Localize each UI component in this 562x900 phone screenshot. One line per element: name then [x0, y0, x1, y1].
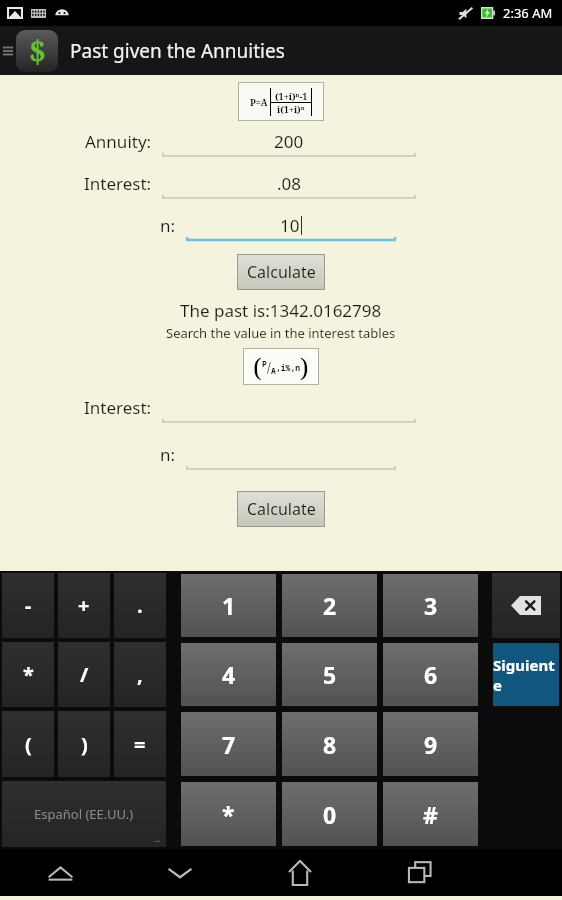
- staticText: #: [423, 799, 438, 830]
- staticText: Calculate: [247, 498, 316, 520]
- button[interactable]: Back: [0, 849, 120, 896]
- button[interactable]: Siguiente: [493, 643, 559, 706]
- staticText: Interest:: [84, 396, 152, 419]
- staticText: 4: [222, 659, 236, 690]
- button[interactable]: n:: [0, 443, 562, 474]
- button[interactable]: Español (EE.UU.): [2, 781, 166, 847]
- staticText: n:: [160, 214, 176, 237]
- staticText: A: [271, 365, 276, 376]
- staticText: Interest:: [84, 172, 152, 195]
- staticText: i(1+i)ⁿ: [277, 103, 305, 115]
- button[interactable]: /: [58, 642, 110, 707]
- staticText: /: [267, 358, 271, 376]
- button[interactable]: Interest:: [0, 396, 562, 427]
- staticText: .08: [277, 172, 302, 195]
- staticText: The past is:1342.0162798: [180, 299, 382, 322]
- staticText: .: [137, 592, 143, 619]
- staticText: /: [80, 661, 89, 688]
- staticText: $: [29, 31, 46, 72]
- staticText: ): [81, 731, 88, 758]
- button[interactable]: n:: [0, 214, 562, 245]
- staticText: (1+i)ⁿ-1: [275, 90, 308, 102]
- button[interactable]: .: [114, 573, 166, 638]
- staticText: ,i%,n: [276, 362, 300, 373]
- button[interactable]: Calculate: [237, 254, 325, 290]
- staticText: (: [25, 731, 32, 758]
- button[interactable]: 6: [383, 643, 478, 706]
- staticText: ,: [137, 661, 143, 688]
- button[interactable]: 8: [282, 712, 377, 776]
- staticText: 1: [222, 590, 236, 621]
- staticText: 9: [424, 729, 438, 760]
- button[interactable]: -: [2, 573, 54, 638]
- staticText: +: [78, 592, 90, 619]
- button[interactable]: 1: [181, 574, 276, 637]
- staticText: Search the value in the interest tables: [166, 324, 396, 342]
- staticText: 2: [323, 590, 337, 621]
- button[interactable]: +: [58, 573, 110, 638]
- staticText: 0: [323, 799, 337, 830]
- staticText: Annuity:: [85, 130, 152, 153]
- button[interactable]: 4: [181, 643, 276, 706]
- button[interactable]: 5: [282, 643, 377, 706]
- button[interactable]: #: [383, 782, 478, 846]
- staticText: =: [134, 731, 146, 758]
- button[interactable]: *: [2, 642, 54, 707]
- button[interactable]: =: [114, 711, 166, 777]
- staticText: P: [262, 358, 267, 369]
- staticText: (: [253, 350, 262, 384]
- button[interactable]: $: [16, 30, 58, 72]
- button[interactable]: 7: [181, 712, 276, 776]
- button[interactable]: Hide keyboard: [120, 849, 240, 896]
- button[interactable]: ): [58, 711, 110, 777]
- button[interactable]: Recent apps: [360, 849, 480, 896]
- button[interactable]: Annuity:: [0, 130, 562, 161]
- button[interactable]: Menu: [0, 26, 16, 75]
- button[interactable]: (: [2, 711, 54, 777]
- staticText: ): [300, 350, 309, 384]
- staticText: Español (EE.UU.): [34, 805, 134, 823]
- staticText: 3: [424, 590, 438, 621]
- staticText: 200: [274, 130, 304, 153]
- button[interactable]: Home: [240, 849, 360, 896]
- staticText: 8: [323, 729, 337, 760]
- button[interactable]: *: [181, 782, 276, 846]
- button[interactable]: Calculate: [237, 491, 325, 527]
- button[interactable]: ,: [114, 642, 166, 707]
- staticText: *: [23, 661, 34, 688]
- staticText: ...: [154, 833, 161, 844]
- staticText: n:: [160, 443, 176, 466]
- staticText: Past given the Annuities: [70, 38, 285, 64]
- staticText: P=A: [250, 96, 268, 108]
- button[interactable]: Interest:: [0, 172, 562, 203]
- staticText: 2:36 AM: [503, 4, 553, 22]
- button[interactable]: Delete: [492, 573, 560, 638]
- button[interactable]: 3: [383, 574, 478, 637]
- button[interactable]: 0: [282, 782, 377, 846]
- staticText: Calculate: [247, 261, 316, 283]
- button[interactable]: 9: [383, 712, 478, 776]
- staticText: 5: [323, 659, 337, 690]
- staticText: 6: [424, 659, 438, 690]
- staticText: 7: [222, 729, 236, 760]
- button[interactable]: 2: [282, 574, 377, 637]
- staticText: 10: [280, 214, 300, 237]
- staticText: *: [222, 799, 235, 830]
- staticText: Siguiente: [493, 655, 559, 695]
- staticText: -: [25, 592, 32, 619]
